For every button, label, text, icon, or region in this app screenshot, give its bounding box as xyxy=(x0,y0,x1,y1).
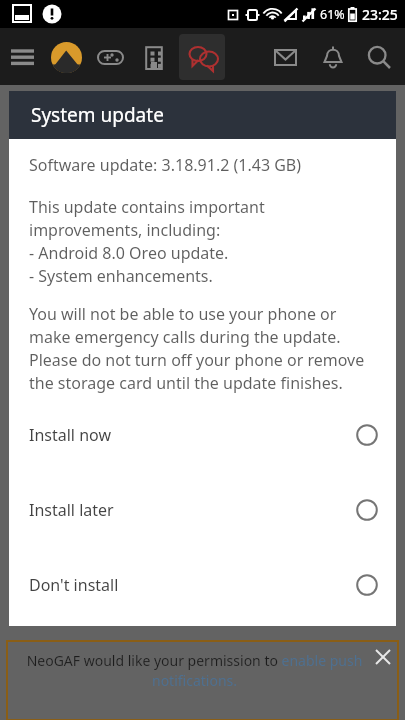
staticText: Install now xyxy=(29,424,111,446)
button[interactable]: Search xyxy=(357,33,401,81)
staticText: Don't install xyxy=(29,574,119,596)
button[interactable]: Messages xyxy=(179,34,225,80)
staticText: NeoGAF would like your permission to ena… xyxy=(24,651,365,691)
button[interactable]: Menu xyxy=(0,35,44,79)
button[interactable]: Forums xyxy=(132,35,176,79)
button[interactable]: Dismiss xyxy=(367,641,399,673)
button[interactable]: Inbox xyxy=(261,33,309,81)
staticText: 23:25 xyxy=(362,5,398,24)
button[interactable]: Games xyxy=(88,35,132,79)
staticText: You will not be able to use your phone o… xyxy=(29,303,378,394)
staticText: This update contains important improveme… xyxy=(29,196,378,287)
staticText: Install later xyxy=(29,499,114,521)
button[interactable]: Alerts xyxy=(309,33,357,81)
button[interactable]: Don't install xyxy=(29,572,378,598)
staticText: 61% xyxy=(320,6,345,23)
button[interactable]: Install later xyxy=(29,497,378,523)
button[interactable]: NeoGAF home xyxy=(44,35,88,79)
staticText: Software update: 3.18.91.2 (1.43 GB) xyxy=(29,154,302,176)
staticText: System update xyxy=(31,102,164,128)
button[interactable]: Install now xyxy=(29,422,378,448)
